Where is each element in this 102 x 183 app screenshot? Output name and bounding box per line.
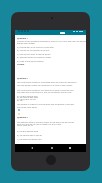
staticText: c) the other one down here: [17, 138, 42, 141]
staticText: e) none of the above answers: [17, 60, 44, 63]
staticText: b) use the toy to hammer in the nail: [17, 49, 50, 52]
staticText: b) the second one here: [17, 96, 38, 99]
staticText: The reason that reading is not useful at…: [17, 89, 74, 92]
staticText: that the learner makes the conditions in…: [17, 84, 73, 87]
staticText: In which of the following examples of to…: [17, 40, 87, 43]
staticText: c) the third in the list: [17, 98, 36, 101]
staticText: c) take the toy apart to see the pieces: [17, 53, 51, 56]
staticText: Question 2: [17, 77, 28, 80]
staticText: The reason that reading is compatible wi…: [17, 81, 77, 84]
staticText: Explain your answer.: [17, 42, 36, 45]
staticText: d) last: [17, 99, 23, 102]
staticText: b) the second one in the list: [17, 134, 42, 137]
button[interactable]: Back: [30, 146, 33, 149]
staticText: The question here is one that relates to…: [17, 121, 75, 124]
button[interactable]: Recents: [68, 146, 71, 149]
staticText: a) playing with a toy train set on the f…: [17, 46, 54, 49]
staticText: Question 1: [17, 37, 28, 40]
button[interactable]: Home: [50, 146, 53, 149]
staticText: not been able to tell what it is that th…: [17, 91, 72, 94]
staticText: The answer is subject to the skill base …: [17, 103, 75, 106]
staticText: that is right for us.: [17, 124, 34, 127]
staticText: not be the same again.: [17, 106, 38, 109]
staticText: a) the first answer here: [17, 130, 39, 133]
staticText: what it is that we can use to make it al…: [17, 123, 62, 126]
staticText: a) the first step to take: [17, 95, 38, 98]
staticText: Answer: [17, 63, 25, 66]
staticText: d) wooden blocks for building a tower: [17, 56, 52, 59]
staticText: Question 3: [17, 116, 28, 119]
